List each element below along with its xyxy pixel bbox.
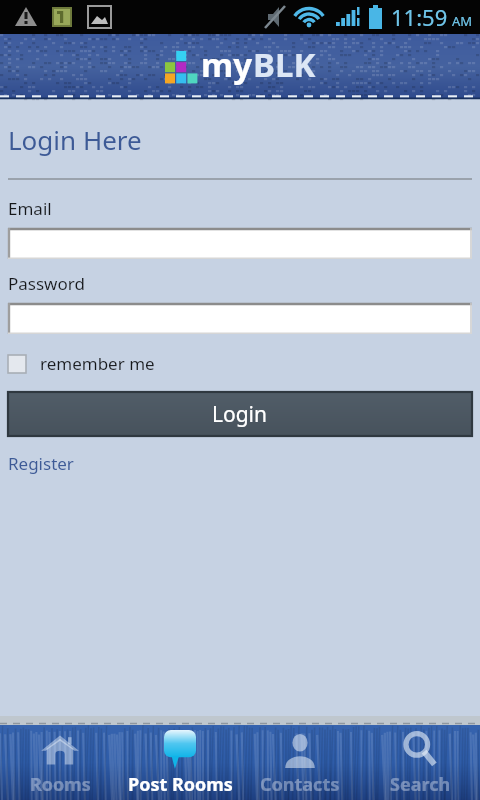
staticText: Email [8, 197, 52, 220]
button[interactable]: Register [8, 452, 74, 475]
staticText: Login Here [8, 122, 142, 157]
staticText: AM [452, 12, 473, 30]
other: Post Rooms [160, 730, 200, 770]
button[interactable] [8, 303, 472, 334]
staticText: Login [212, 400, 268, 429]
staticText: 11:59 [391, 2, 448, 32]
button[interactable]: remember me [8, 352, 155, 375]
other: Contacts [280, 730, 320, 770]
button[interactable]: Rooms [0, 716, 120, 800]
button[interactable]: Contacts [240, 716, 360, 800]
other: Search [400, 730, 440, 770]
other: Rooms [40, 730, 80, 770]
button[interactable] [8, 228, 472, 259]
staticText: Register [8, 452, 74, 475]
staticText: Search [390, 772, 451, 797]
button[interactable]: Login [8, 392, 472, 436]
staticText: remember me [40, 352, 155, 375]
staticText: BLK [253, 42, 316, 87]
staticText: Rooms [30, 772, 91, 797]
button[interactable]: Search [360, 716, 480, 800]
staticText: Contacts [260, 772, 340, 797]
staticText: Password [8, 272, 85, 295]
staticText: Post Rooms [128, 772, 233, 797]
button[interactable]: Post Rooms [120, 716, 240, 800]
staticText: my [201, 42, 253, 87]
